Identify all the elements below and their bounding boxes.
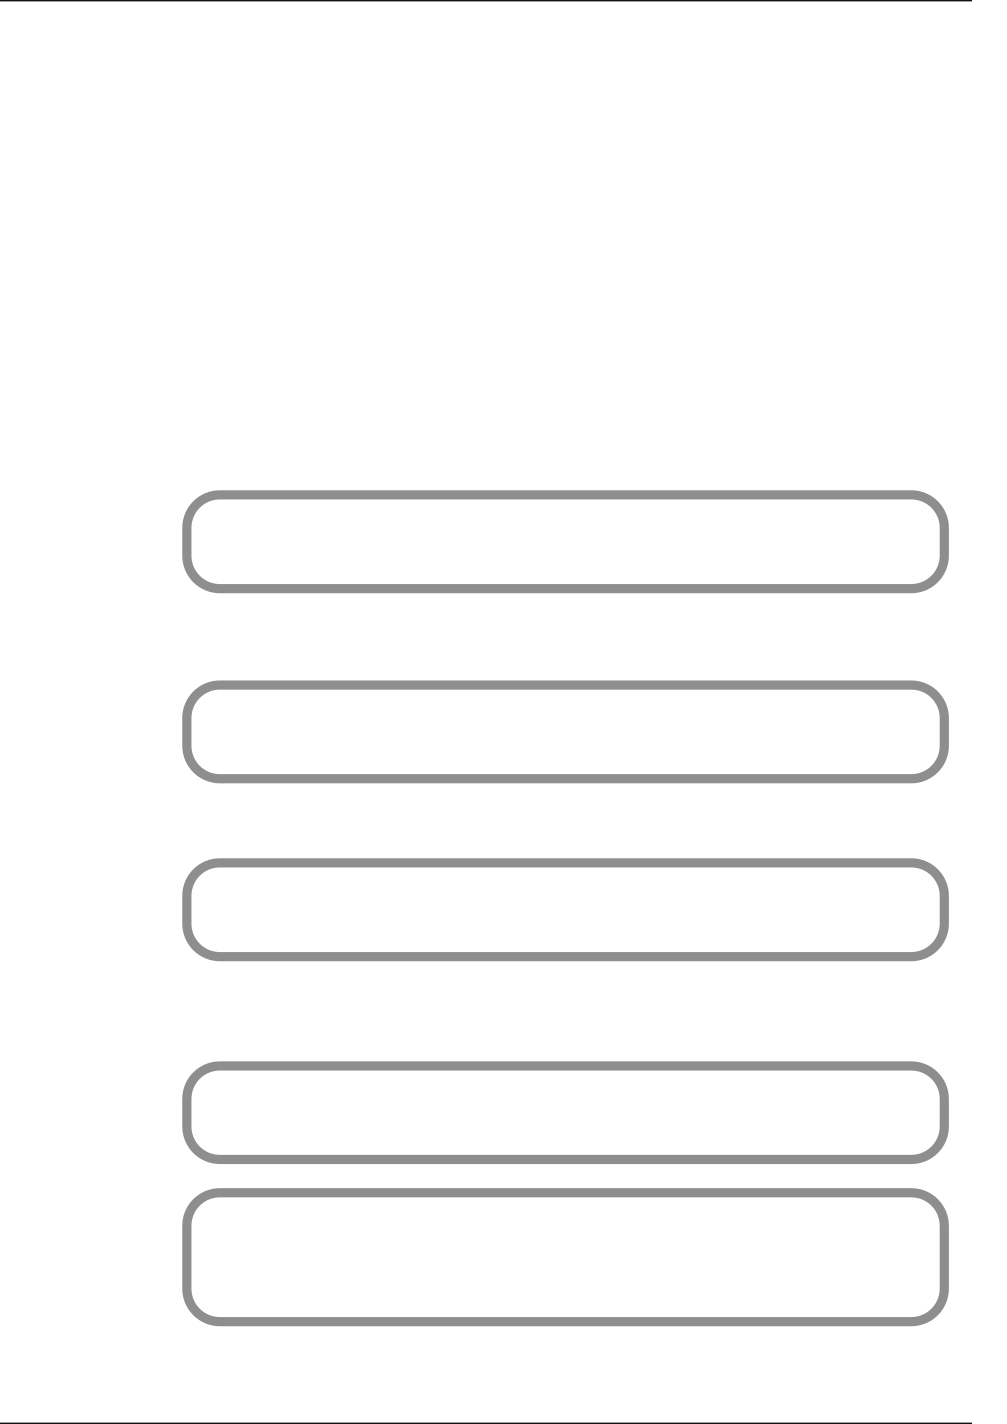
button[interactable]: Field one (187, 495, 944, 589)
button[interactable]: Field three (187, 863, 944, 957)
button[interactable]: Field four (187, 1066, 944, 1159)
button[interactable]: Field two (187, 685, 944, 779)
button[interactable]: Field five (187, 1193, 944, 1322)
